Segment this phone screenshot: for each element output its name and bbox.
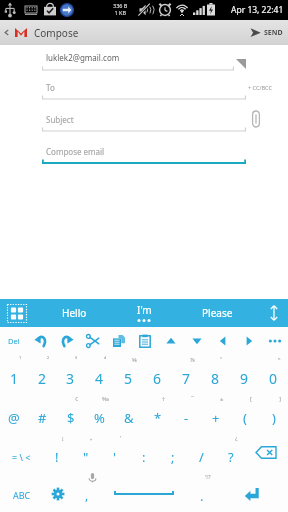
button[interactable]: Undo (27, 327, 54, 355)
button[interactable]: 9 (230, 355, 259, 394)
staticText: '!? (205, 473, 211, 481)
staticText: Del (8, 336, 20, 346)
staticText: $ (67, 409, 75, 427)
button[interactable]: Space (101, 472, 187, 511)
button[interactable]: Del (0, 327, 27, 355)
button[interactable]: More (262, 327, 288, 355)
button[interactable] (36, 105, 252, 133)
button[interactable]: ; (158, 433, 187, 472)
staticText: ¯ (191, 395, 195, 403)
staticText: ⁼ (220, 356, 223, 364)
button[interactable]: Choose input method (0, 299, 34, 327)
button[interactable]: Cut (80, 327, 106, 355)
staticText: „ (90, 434, 93, 442)
staticText: ⅞ (190, 356, 195, 364)
button[interactable]: , (72, 472, 101, 511)
button[interactable]: ± (201, 394, 230, 433)
staticText: ⁴ (104, 356, 107, 364)
button[interactable]: ⁿ (259, 355, 288, 394)
button[interactable]: ABC (0, 472, 43, 511)
staticText: ) (272, 409, 276, 427)
staticText: ( (243, 409, 247, 427)
button[interactable]: Enter (216, 472, 288, 511)
button[interactable]: Back (0, 20, 83, 45)
staticText: ‰ (102, 395, 110, 403)
button[interactable]: = \ < (0, 433, 42, 472)
staticText: * (154, 409, 162, 427)
other: Back (3, 29, 10, 36)
button[interactable]: † (143, 394, 172, 433)
staticText: % (94, 409, 105, 427)
staticText: , (85, 487, 89, 503)
button[interactable]: '!? (187, 472, 216, 511)
staticText: 2 (38, 369, 47, 388)
staticText: 5 (124, 369, 133, 388)
button[interactable]: Please (174, 299, 260, 327)
button[interactable]: Backspace (245, 433, 288, 472)
staticText: Subject (46, 114, 74, 125)
staticText: Please (202, 306, 233, 320)
staticText: ± (220, 395, 224, 403)
staticText: ! (55, 448, 59, 466)
button[interactable]: I'm (114, 299, 174, 327)
button[interactable]: & (114, 394, 143, 433)
button[interactable]: ¿ (216, 433, 245, 472)
staticText: = \ < (12, 451, 31, 463)
staticText: - (184, 409, 189, 427)
staticText: ¿ (235, 434, 238, 442)
staticText: 336 B (113, 2, 128, 9)
button[interactable]: „ (71, 433, 100, 472)
button[interactable]: Settings (43, 472, 72, 511)
staticText: 8 (211, 369, 220, 388)
staticText: ⁿ (278, 356, 281, 364)
staticText: Compose (34, 26, 79, 40)
staticText: ¹ (19, 356, 22, 364)
staticText: ' (113, 448, 116, 466)
button[interactable] (36, 75, 252, 103)
staticText: ² (47, 356, 50, 364)
button[interactable]: [ (230, 394, 259, 433)
button[interactable]: / (187, 433, 216, 472)
staticText: ? (228, 448, 234, 466)
button[interactable]: Left (210, 327, 236, 355)
button[interactable]: 6 (143, 355, 172, 394)
staticText: 4 (95, 369, 104, 388)
button[interactable]: @ (0, 394, 28, 433)
button[interactable]: ³ (56, 355, 85, 394)
button[interactable]: Expand suggestions (260, 299, 288, 327)
button[interactable]: ⁼ (201, 355, 230, 394)
button[interactable]: + CC/BCC (248, 84, 272, 91)
button[interactable]: ‘ (100, 433, 129, 472)
staticText: 9 (240, 369, 249, 388)
button[interactable]: ⁴ (85, 355, 114, 394)
staticText: @ (8, 409, 20, 427)
staticText: Hello (62, 306, 87, 320)
button[interactable]: ¯ (172, 394, 201, 433)
button[interactable]: # (28, 394, 56, 433)
button[interactable]: SEND (250, 20, 288, 45)
staticText: luklek2@gmail.com (46, 52, 120, 63)
button[interactable] (36, 45, 252, 73)
button[interactable]: ] (259, 394, 288, 433)
button[interactable]: ¢ (56, 394, 85, 433)
staticText: ¢ (75, 395, 79, 403)
button[interactable]: Paste (132, 327, 158, 355)
staticText: SEND (264, 28, 283, 38)
button[interactable]: ⅞ (172, 355, 201, 394)
button[interactable]: Hello (34, 299, 114, 327)
button[interactable]: Down (184, 327, 210, 355)
button[interactable]: Copy (106, 327, 132, 355)
button[interactable]: ¡ (42, 433, 71, 472)
button[interactable]: Right (236, 327, 262, 355)
button[interactable] (36, 137, 252, 165)
staticText: [ (250, 395, 252, 403)
button[interactable]: : (129, 433, 158, 472)
button[interactable]: ² (28, 355, 56, 394)
button[interactable]: ⅝ (114, 355, 143, 394)
button[interactable]: ¹ (0, 355, 28, 394)
button[interactable]: Redo (54, 327, 80, 355)
staticText: I'm (137, 303, 152, 317)
button[interactable]: ‰ (85, 394, 114, 433)
staticText: ‘ (120, 434, 122, 442)
button[interactable]: Up (158, 327, 184, 355)
